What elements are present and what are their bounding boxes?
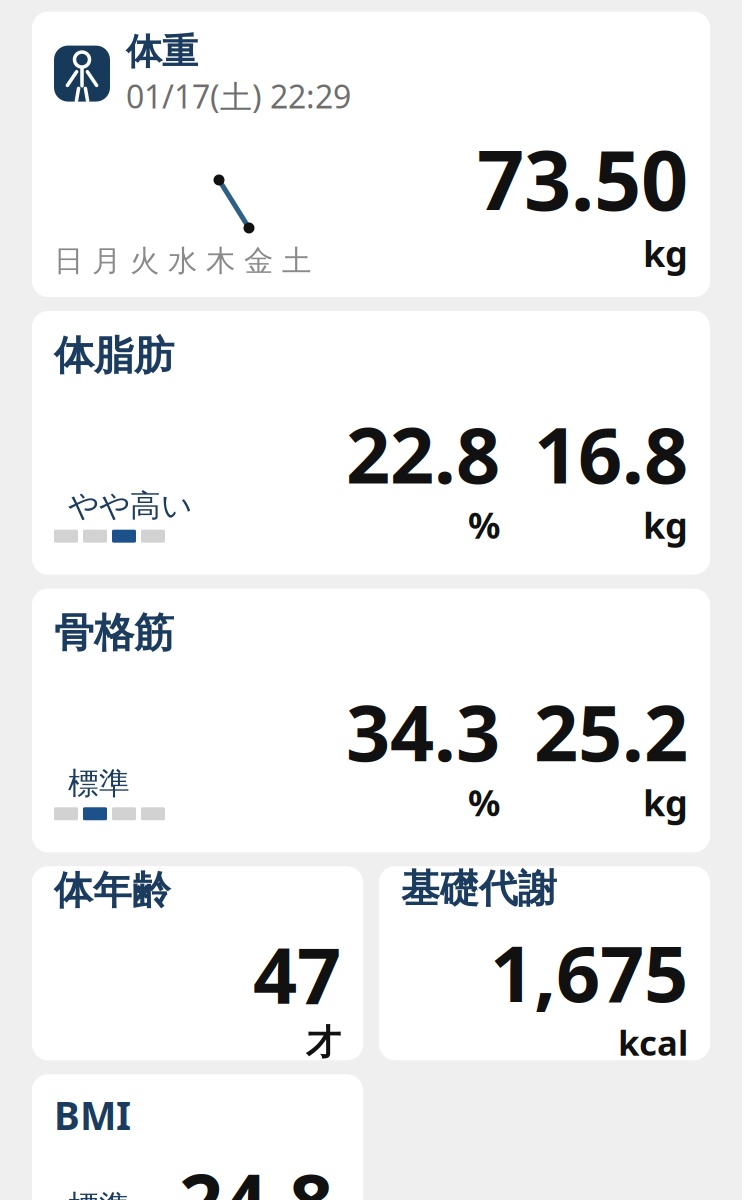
staticText: 34.3 [346, 680, 500, 782]
staticText: 22.8 [346, 402, 500, 505]
button[interactable]: BMI [32, 1074, 363, 1200]
staticText: kcal [618, 1019, 688, 1065]
staticText: 体重 [126, 30, 198, 74]
button[interactable]: 体脂肪 [32, 311, 710, 575]
staticText: やや高い [68, 487, 192, 525]
staticText: 日 月 火 水 木 金 土 [54, 243, 311, 279]
staticText: 基礎代謝 [401, 865, 557, 913]
staticText: kg [643, 501, 688, 549]
staticText: 体年齢 [54, 867, 171, 914]
staticText: 体脂肪 [54, 331, 174, 380]
staticText: 47 [253, 922, 341, 1025]
staticText: kg [643, 229, 688, 277]
button[interactable]: 骨格筋 [32, 589, 710, 852]
button[interactable]: 体年齢 [32, 866, 363, 1060]
staticText: 標準 [68, 765, 130, 802]
staticText: 1,675 [490, 921, 688, 1023]
staticText: BMI [54, 1089, 131, 1141]
staticText: 16.8 [534, 402, 688, 505]
staticText: % [468, 778, 500, 826]
staticText: 73.50 [477, 123, 688, 233]
staticText: 才 [306, 1021, 341, 1064]
staticText: 骨格筋 [54, 609, 174, 658]
staticText: 標準 [68, 1188, 130, 1200]
staticText: kg [643, 778, 688, 826]
staticText: 24.8 [179, 1149, 333, 1200]
staticText: 25.2 [534, 680, 688, 782]
staticText: 01/17(土) 22:29 [126, 75, 351, 117]
staticText: % [468, 501, 500, 549]
button[interactable]: 基礎代謝 [379, 866, 710, 1060]
button[interactable]: 体重 [32, 12, 710, 297]
